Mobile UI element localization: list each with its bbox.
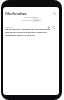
button[interactable]: Share bbox=[52, 26, 55, 29]
button[interactable]: Search bbox=[53, 12, 56, 15]
staticText: Isigaba 1 bbox=[5, 26, 14, 29]
staticText: izindaba ezimnandi bbox=[22, 19, 39, 21]
staticText: Ngaphesheya kwezintaba kwakukhona idolob… bbox=[5, 28, 56, 37]
staticText: Okufundwa bbox=[5, 11, 27, 16]
button[interactable]: Bookmark bbox=[47, 26, 50, 29]
staticText: Landela bbox=[33, 19, 40, 21]
button[interactable]: Landela bbox=[31, 18, 42, 22]
staticText: umculo wabantu bbox=[24, 16, 39, 18]
